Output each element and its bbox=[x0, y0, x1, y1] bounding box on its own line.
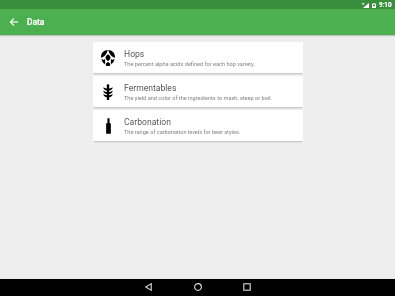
staticText: The range of carbonation levels for beer… bbox=[124, 129, 241, 136]
staticText: The yield and color of the ingredients t… bbox=[124, 95, 273, 102]
staticText: The percent alpha acids defined for each… bbox=[124, 61, 255, 68]
staticText: 9:10 bbox=[379, 1, 392, 9]
staticText: Data bbox=[27, 17, 45, 27]
button[interactable]: Fermentables bbox=[93, 76, 303, 107]
button[interactable]: Back bbox=[140, 279, 157, 295]
staticText: Hops bbox=[124, 49, 145, 59]
button[interactable]: Home bbox=[189, 279, 206, 295]
button[interactable]: Carbonation bbox=[93, 110, 303, 141]
button[interactable]: Hops bbox=[93, 42, 303, 73]
staticText: Carbonation bbox=[124, 117, 171, 127]
button[interactable]: Recents bbox=[238, 279, 255, 295]
button[interactable]: Navigate up bbox=[0, 9, 27, 35]
staticText: Fermentables bbox=[124, 83, 177, 93]
